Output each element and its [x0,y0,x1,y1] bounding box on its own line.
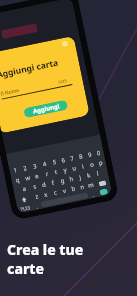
button[interactable]: Enter [99,188,108,196]
staticText: carte [7,259,45,278]
button[interactable]: u [68,163,79,174]
staticText: b [71,185,76,193]
staticText: 5 [52,158,57,166]
button[interactable]: 3 [29,160,41,172]
staticText: Aggiungi [32,102,60,115]
button[interactable]: Space [40,192,89,208]
staticText: Aggiungi carta [0,56,60,81]
staticText: 7 [70,154,75,163]
button[interactable]: Backspace [94,177,110,189]
staticText: l [96,170,100,178]
button[interactable]: 6 [58,155,68,166]
staticText: h [69,175,74,183]
staticText: o [89,160,95,169]
staticText: 6 [61,156,66,165]
button[interactable]: . [87,190,97,198]
staticText: c [53,188,58,197]
button[interactable]: g [57,175,68,187]
staticText: 8 [78,152,84,161]
staticText: 0/25 [58,78,68,85]
staticText: v [62,186,67,195]
button[interactable]: h [66,173,76,185]
staticText: s [32,182,37,191]
staticText: a [22,185,27,193]
staticText: m [87,181,95,190]
button[interactable]: Shift [16,193,32,206]
staticText: u [72,164,77,173]
button[interactable]: f [48,177,59,189]
staticText: q [15,176,20,184]
staticText: k [86,171,92,180]
staticText: j [78,173,82,181]
staticText: , [36,202,39,209]
staticText: x [43,190,49,199]
button[interactable]: r [41,168,53,180]
button[interactable]: Aggiungi [23,100,68,118]
staticText: Il Nome [0,87,20,98]
staticText: 3 [32,162,38,170]
button[interactable]: 1 [10,164,21,176]
staticText: ?123 [20,204,31,212]
button[interactable]: w [21,172,33,184]
staticText: 9 [87,151,93,159]
button[interactable]: x [40,189,52,200]
staticText: e [34,172,40,180]
button[interactable]: n [76,181,87,193]
button[interactable]: e [31,170,43,182]
staticText: y [63,166,68,174]
staticText: 1 [13,166,18,175]
button[interactable]: 7 [66,153,77,164]
button[interactable]: a [19,183,30,195]
button[interactable]: i [77,161,88,172]
button[interactable]: j [74,172,85,183]
staticText: d [41,180,47,189]
button[interactable]: s [28,181,40,193]
button[interactable]: , [32,202,42,210]
button[interactable]: m [85,180,96,191]
button[interactable]: c [50,187,61,198]
button[interactable]: k [83,170,94,181]
staticText: w [25,174,31,182]
button[interactable]: 4 [39,158,51,170]
button[interactable]: o [86,159,97,171]
button[interactable]: z [30,191,42,202]
staticText: 4 [42,160,48,168]
button[interactable]: l [92,168,103,180]
button[interactable]: 2 [19,162,31,174]
staticText: r [45,170,50,178]
staticText: . [91,191,95,197]
staticText: g [60,177,65,185]
staticText: f [51,179,56,187]
button[interactable]: 5 [49,156,60,168]
button[interactable]: q [12,174,23,186]
button[interactable]: Card colour [61,40,68,47]
button[interactable]: p [95,157,106,169]
staticText: n [80,183,85,191]
button[interactable]: t [51,166,62,178]
button[interactable]: 0 [93,147,104,159]
button[interactable]: 9 [84,149,95,161]
button[interactable]: d [38,179,50,191]
staticText: z [34,192,39,201]
staticText: 2 [23,164,28,173]
staticText: i [81,162,85,171]
button[interactable]: 8 [75,151,86,163]
staticText: p [98,159,103,167]
button[interactable]: v [59,185,70,197]
staticText: Crea le tue [7,240,84,259]
button[interactable]: ?123 [18,204,33,212]
button[interactable]: b [68,183,78,195]
staticText: 0 [96,149,101,157]
button[interactable]: y [60,164,70,176]
staticText: t [54,168,59,176]
